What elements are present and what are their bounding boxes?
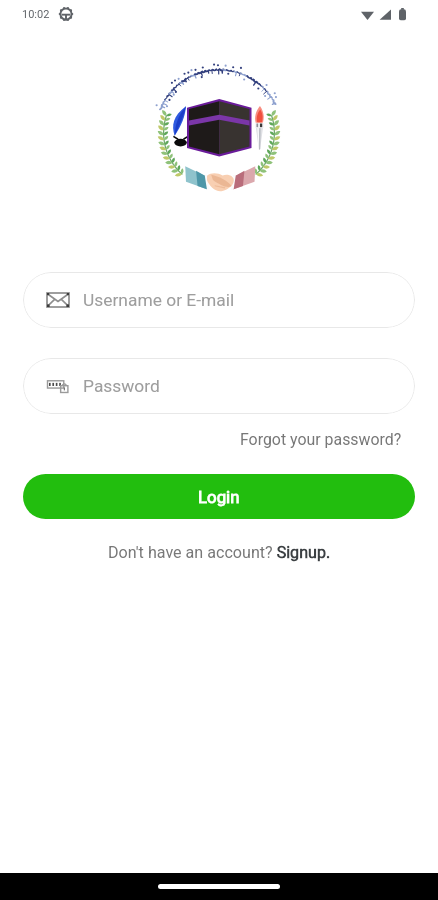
button[interactable]: Login [23, 474, 415, 519]
button[interactable]: Don't have an account? Signup. [108, 543, 331, 562]
button[interactable]: Email [23, 272, 415, 328]
other: Password [47, 380, 69, 393]
button[interactable]: Forgot your password? [240, 430, 402, 449]
staticText: 10:02 [22, 8, 50, 21]
other: Status icon [59, 7, 73, 21]
other: Email [47, 293, 69, 307]
staticText: Username or E-mail [83, 290, 235, 310]
staticText: Login [198, 487, 240, 507]
staticText: Password [83, 376, 160, 396]
button[interactable]: Password [23, 358, 415, 414]
